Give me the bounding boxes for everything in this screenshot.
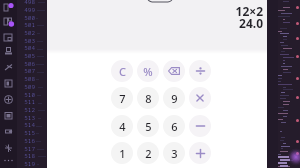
button[interactable]: 9 <box>163 87 185 109</box>
button[interactable]: 7 <box>111 87 133 109</box>
staticText: 514 <box>19 121 35 129</box>
staticText: 513 <box>19 114 35 122</box>
button[interactable]: Sidebar tool 9 <box>3 126 14 137</box>
staticText: 503 <box>19 37 35 45</box>
button[interactable]: 8 <box>137 87 159 109</box>
staticText: 5 <box>145 119 152 134</box>
button[interactable]: ÷ <box>189 60 211 82</box>
button[interactable]: Sidebar tool 4 <box>3 46 14 57</box>
staticText: 498 <box>19 0 35 6</box>
button[interactable]: 1 <box>111 142 133 164</box>
staticText: 500 <box>19 14 35 22</box>
button[interactable]: 3 <box>163 142 185 164</box>
button[interactable]: Sidebar tool 7 <box>3 94 14 105</box>
staticText: 6 <box>171 119 178 134</box>
staticText: 510 <box>19 91 35 99</box>
button[interactable]: × <box>189 87 211 109</box>
staticText: 506 <box>19 60 35 68</box>
staticText: 24.0 <box>239 15 263 31</box>
button[interactable]: 5 <box>137 115 159 137</box>
button[interactable]: % <box>137 60 159 82</box>
button[interactable]: − <box>189 115 211 137</box>
staticText: 507 <box>19 67 35 75</box>
button[interactable]: Sidebar tool 8 <box>3 110 14 121</box>
staticText: 3 <box>171 146 178 161</box>
staticText: 517 <box>19 145 35 153</box>
staticText: % <box>143 64 153 79</box>
staticText: 2 <box>145 146 152 161</box>
staticText: 1 <box>119 146 126 161</box>
staticText: 8 <box>145 91 152 106</box>
staticText: 12×2 <box>235 3 263 19</box>
staticText: 4 <box>119 119 126 134</box>
staticText: 515 <box>19 129 35 137</box>
button[interactable]: ⌫ <box>163 60 185 82</box>
staticText: 501 <box>19 21 35 29</box>
staticText: 509 <box>19 83 35 91</box>
button[interactable]: Sidebar tool 5 <box>3 62 14 73</box>
staticText: 512 <box>19 106 35 114</box>
staticText: 504 <box>19 44 35 52</box>
button[interactable]: 4 <box>111 115 133 137</box>
staticText: 502 <box>19 29 35 37</box>
staticText: 511 <box>19 98 35 106</box>
button[interactable]: Sidebar tool 2 <box>3 17 14 28</box>
staticText: 516 <box>19 137 35 145</box>
staticText: 518 <box>19 152 35 160</box>
staticText: C <box>119 64 126 79</box>
staticText: 7 <box>119 91 126 106</box>
button[interactable]: 6 <box>163 115 185 137</box>
staticText: 519 <box>19 160 35 168</box>
button[interactable]: Sidebar tool 1 <box>3 2 14 13</box>
staticText: 499 <box>19 6 35 14</box>
button[interactable]: C <box>111 60 133 82</box>
staticText: 505 <box>19 52 35 60</box>
button[interactable]: + <box>189 142 211 164</box>
staticText: 9 <box>171 91 178 106</box>
button[interactable]: Sidebar tool 6 <box>3 78 14 89</box>
button[interactable]: Sidebar tool 10 <box>3 143 14 154</box>
button[interactable]: Sidebar tool 3 <box>3 32 14 43</box>
staticText: 508 <box>19 75 35 83</box>
button[interactable]: 2 <box>137 142 159 164</box>
